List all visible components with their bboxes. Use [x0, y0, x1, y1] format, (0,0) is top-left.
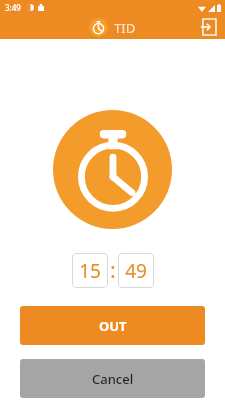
button[interactable]: 49	[118, 253, 154, 288]
staticText: 3:49	[5, 2, 21, 13]
button[interactable]: Log out	[197, 16, 219, 38]
button[interactable]: OUT	[20, 306, 205, 345]
staticText: 49	[125, 258, 147, 284]
staticText: :	[110, 256, 116, 285]
button[interactable]: 15	[72, 253, 108, 288]
staticText: 15	[79, 258, 101, 284]
button[interactable]: Cancel	[20, 359, 205, 398]
staticText: OUT	[99, 317, 127, 335]
staticText: TID	[114, 19, 136, 37]
staticText: Cancel	[92, 370, 134, 388]
